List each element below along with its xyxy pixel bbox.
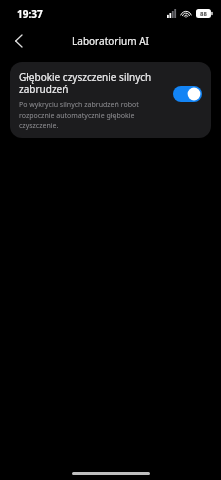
- button[interactable]: Głębokie czyszczenie silnych zabrudzeń: [10, 62, 211, 138]
- staticText: 88: [200, 10, 207, 18]
- staticText: Po wykryciu silnych zabrudzeń robot rozp…: [19, 100, 167, 130]
- staticText: 19:37: [17, 7, 43, 21]
- button[interactable]: Toggle deep cleaning: [173, 86, 202, 102]
- button[interactable]: Back: [6, 29, 30, 53]
- staticText: Głębokie czyszczenie silnych zabrudzeń: [19, 70, 167, 96]
- staticText: Laboratorium AI: [72, 34, 149, 48]
